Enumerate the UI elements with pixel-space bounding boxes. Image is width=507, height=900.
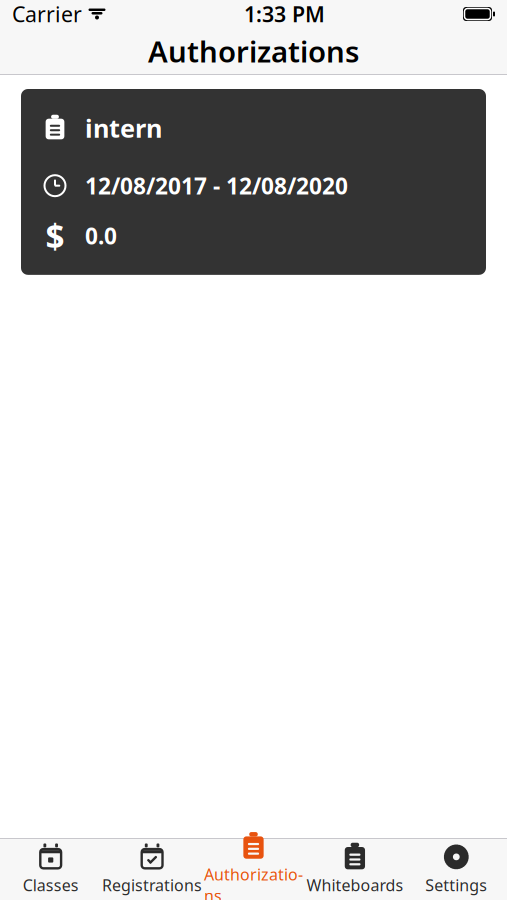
staticText: Carrier bbox=[12, 0, 82, 28]
staticText: Settings bbox=[425, 874, 487, 896]
staticText: Registrations bbox=[102, 874, 202, 896]
staticText: 1:33 PM bbox=[244, 0, 325, 28]
button[interactable]: Settings bbox=[406, 839, 507, 900]
staticText: 12/08/2017 - 12/08/2020 bbox=[85, 171, 348, 201]
button[interactable]: intern bbox=[21, 89, 486, 275]
button[interactable]: Whiteboards bbox=[304, 839, 406, 900]
staticText: Authorizations bbox=[204, 864, 303, 900]
staticText: Authorizations bbox=[148, 31, 359, 70]
button[interactable]: Registrations bbox=[101, 839, 203, 900]
staticText: Classes bbox=[23, 874, 79, 896]
button[interactable]: Classes bbox=[0, 839, 101, 900]
staticText: $ bbox=[45, 214, 64, 258]
button[interactable]: Authorizations bbox=[203, 839, 304, 900]
staticText: Whiteboards bbox=[306, 874, 403, 896]
staticText: intern bbox=[85, 111, 162, 145]
staticText: 0.0 bbox=[85, 221, 117, 251]
